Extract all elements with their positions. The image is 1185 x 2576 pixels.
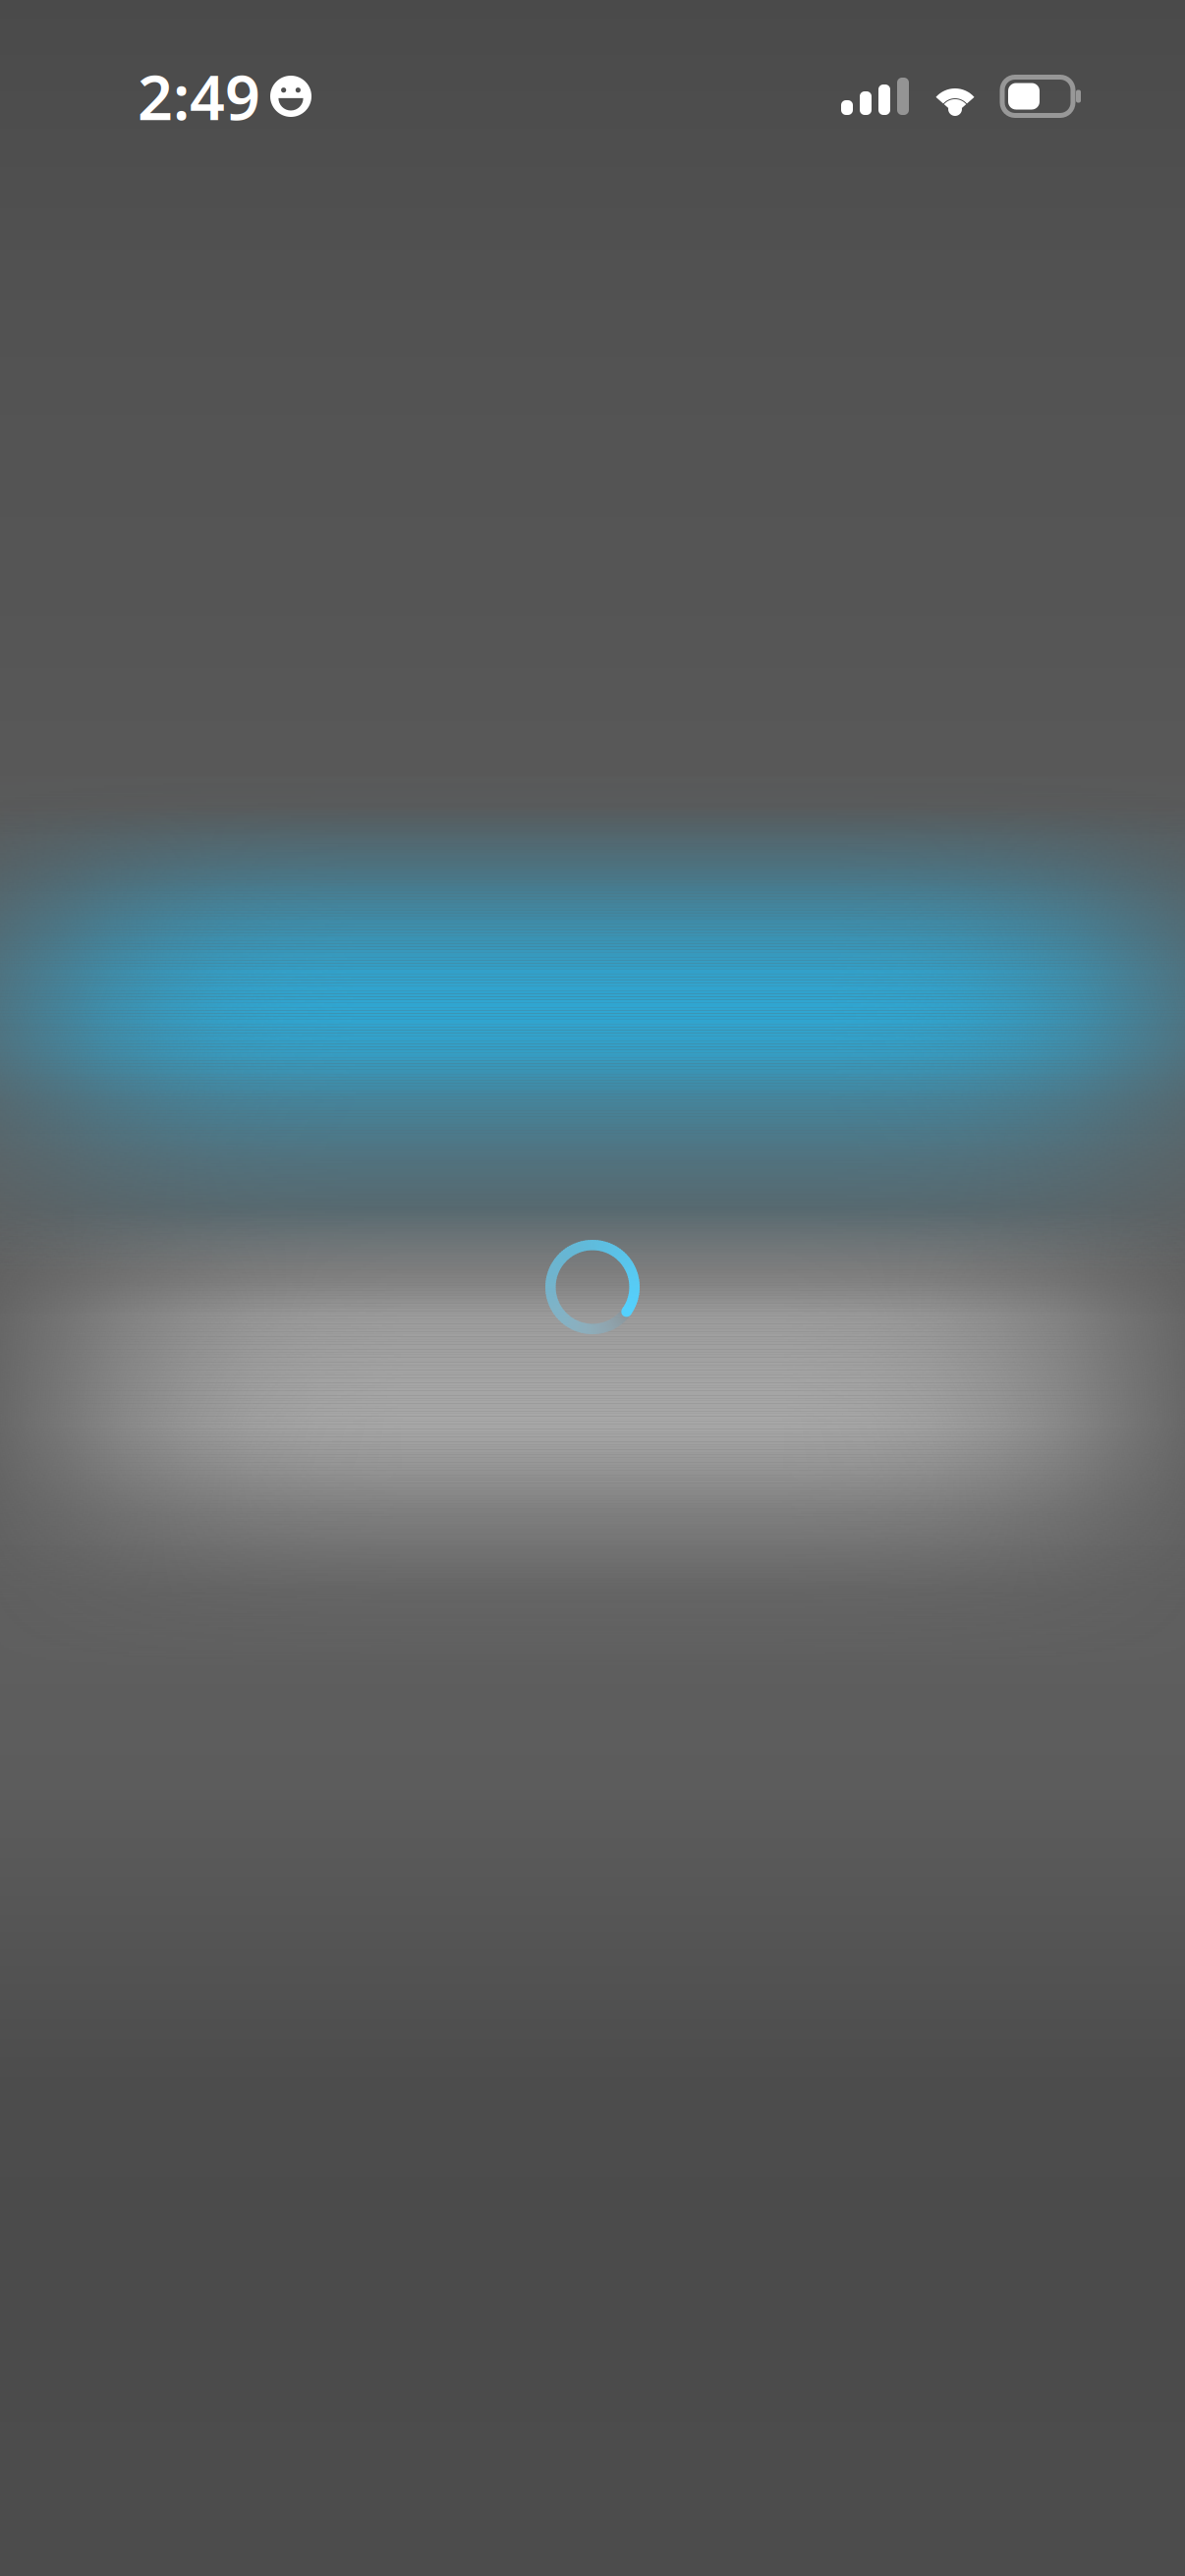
staticText: 2:49: [138, 55, 260, 137]
